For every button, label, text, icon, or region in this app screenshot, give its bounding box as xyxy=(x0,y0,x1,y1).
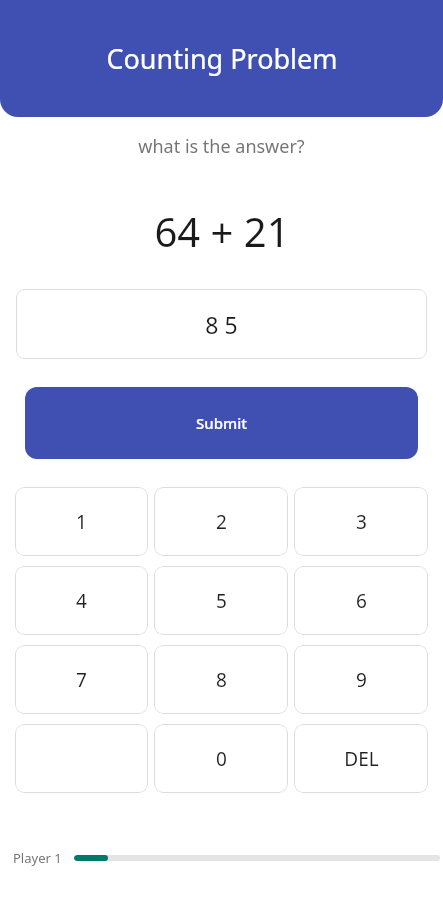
staticText: Counting Problem xyxy=(106,40,338,77)
staticText: DEL xyxy=(344,746,379,772)
button[interactable]: 5 xyxy=(154,566,288,635)
button[interactable] xyxy=(15,724,148,793)
button[interactable]: 0 xyxy=(154,724,288,793)
button[interactable]: 9 xyxy=(294,645,428,714)
button[interactable]: 8 xyxy=(154,645,288,714)
staticText: 64 + 21 xyxy=(154,204,290,258)
staticText: 4 xyxy=(76,588,87,614)
staticText: what is the answer? xyxy=(138,134,305,159)
button[interactable]: 1 xyxy=(15,487,148,556)
staticText: 9 xyxy=(356,667,367,693)
button[interactable]: DEL xyxy=(294,724,428,793)
staticText: 0 xyxy=(216,746,227,772)
button[interactable]: 2 xyxy=(154,487,288,556)
staticText: 1 xyxy=(76,509,87,535)
staticText: 6 xyxy=(356,588,367,614)
button[interactable]: 6 xyxy=(294,566,428,635)
button[interactable]: 7 xyxy=(15,645,148,714)
staticText: 8 5 xyxy=(205,309,238,340)
staticText: 8 xyxy=(216,667,227,693)
staticText: 5 xyxy=(216,588,227,614)
staticText: 3 xyxy=(356,509,367,535)
staticText: 2 xyxy=(216,509,227,535)
button[interactable]: 8 5 xyxy=(16,289,427,359)
button[interactable]: 4 xyxy=(15,566,148,635)
staticText: Player 1 xyxy=(13,849,62,867)
button[interactable]: 3 xyxy=(294,487,428,556)
staticText: 7 xyxy=(76,667,87,693)
button[interactable]: Submit xyxy=(25,387,418,459)
staticText: Submit xyxy=(196,413,247,433)
